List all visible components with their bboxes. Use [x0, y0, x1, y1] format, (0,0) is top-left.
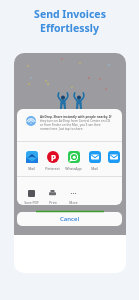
- button[interactable]: P: [42, 142, 63, 171]
- button[interactable]: [105, 142, 122, 171]
- staticText: AirDrop. Share instantly with people nea…: [40, 115, 112, 119]
- staticText: they turn on AirDrop from Control Center…: [40, 119, 111, 131]
- staticText: Save PDF: [24, 200, 39, 205]
- button[interactable]: Save PDF: [21, 177, 42, 205]
- button[interactable]: WhatsApp: [63, 142, 84, 171]
- staticText: Effortlessly: [40, 21, 99, 35]
- button[interactable]: More: [63, 177, 84, 205]
- button[interactable]: AirDrop. Share instantly with people nea…: [17, 109, 122, 141]
- staticText: Mail: [28, 166, 35, 171]
- button[interactable]: Mail: [21, 142, 42, 171]
- staticText: P: [51, 152, 56, 163]
- staticText: More: [69, 200, 78, 205]
- staticText: Pinterest: [45, 166, 60, 171]
- staticText: Cancel: [60, 215, 80, 223]
- button[interactable]: Cancel: [17, 212, 122, 226]
- staticText: Mail: [91, 166, 98, 171]
- staticText: WhatsApp: [65, 166, 82, 171]
- staticText: Print: [49, 200, 57, 205]
- button[interactable]: Mail: [84, 142, 105, 171]
- staticText: Send Invoices: [34, 7, 106, 21]
- button[interactable]: Print: [42, 177, 63, 205]
